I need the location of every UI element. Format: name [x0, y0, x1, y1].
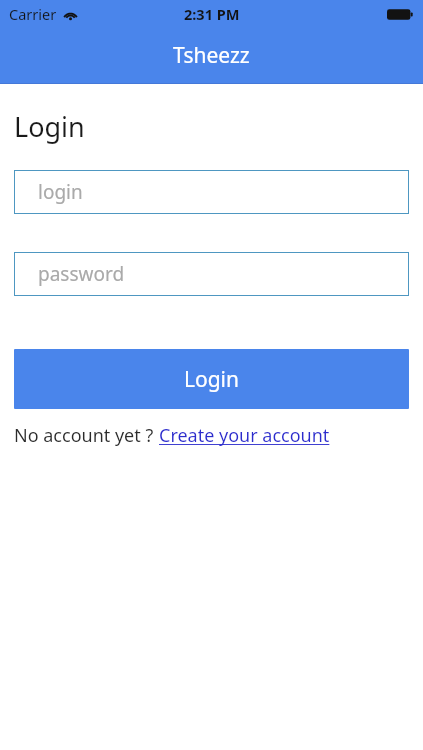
staticText: Tsheezz: [173, 41, 250, 70]
staticText: password: [38, 261, 125, 287]
staticText: No account yet ?: [14, 423, 154, 448]
staticText: Carrier: [9, 4, 57, 24]
staticText: Login: [184, 365, 240, 394]
button[interactable]: Login: [14, 349, 409, 409]
staticText: login: [38, 179, 83, 205]
button[interactable]: Create your account: [159, 423, 330, 448]
button[interactable]: Login field: [14, 170, 409, 214]
staticText: 2:31 PM: [184, 4, 240, 24]
staticText: Create your account: [159, 423, 330, 448]
staticText: Login: [14, 108, 85, 145]
button[interactable]: Password field: [14, 252, 409, 296]
